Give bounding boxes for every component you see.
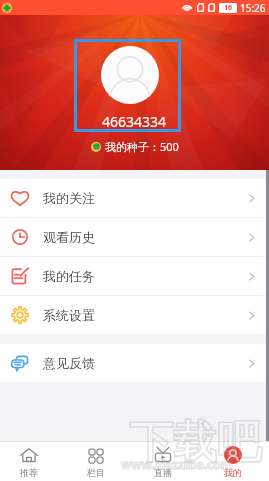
staticText: 意见反馈	[43, 355, 95, 371]
staticText: 46634334	[102, 112, 167, 131]
button[interactable]: 我的任务	[0, 257, 269, 295]
staticText: 栏目	[87, 467, 105, 478]
button[interactable]: 系统设置	[0, 296, 269, 334]
button[interactable]: 意见反馈	[0, 344, 269, 382]
staticText: 我的种子：500	[105, 139, 179, 154]
staticText: 我的	[224, 467, 242, 478]
staticText: 我的任务	[43, 268, 95, 284]
staticText: 直播	[154, 467, 172, 478]
button[interactable]: Mine	[203, 442, 263, 481]
button[interactable]	[74, 39, 181, 132]
staticText: www.xiazaiba.com	[121, 456, 233, 472]
button[interactable]: 观看历史	[0, 218, 269, 256]
staticText: 推荐	[20, 467, 38, 478]
button[interactable]: 我的关注	[0, 179, 269, 217]
button[interactable]: Live	[133, 442, 193, 481]
staticText: 系统设置	[43, 307, 95, 323]
staticText: 16	[224, 3, 233, 13]
button[interactable]: Recommend	[0, 442, 59, 481]
button[interactable]: Categories	[66, 442, 126, 481]
staticText: 观看历史	[43, 229, 95, 245]
staticText: 下载吧	[129, 415, 261, 470]
staticText: 15:26	[240, 1, 266, 15]
staticText: 我的关注	[43, 190, 95, 206]
